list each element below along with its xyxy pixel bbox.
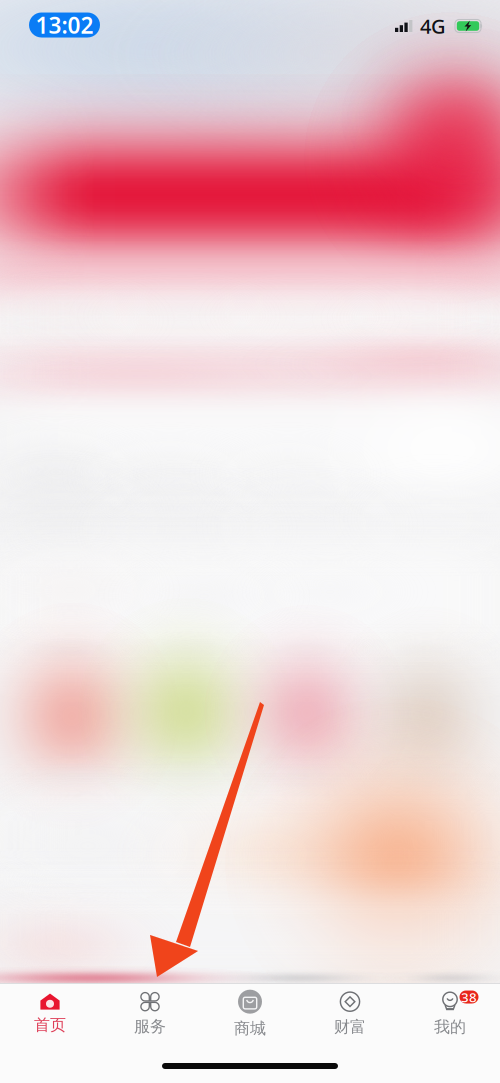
staticText: 38 xyxy=(461,988,477,1006)
staticText: 服务 xyxy=(134,1017,166,1036)
staticText: 13:02 xyxy=(35,10,93,40)
button[interactable]: 首页 xyxy=(0,986,100,1042)
button[interactable]: 服务 xyxy=(100,986,200,1042)
staticText: 4G xyxy=(420,13,446,39)
staticText: 我的 xyxy=(434,1017,466,1037)
button[interactable]: 财富 xyxy=(300,986,400,1042)
button[interactable]: 我的 xyxy=(400,986,500,1042)
button[interactable]: 商城 xyxy=(200,986,300,1042)
staticText: 财富 xyxy=(334,1017,366,1037)
staticText: 首页 xyxy=(34,1015,66,1035)
staticText: 商城 xyxy=(234,1019,266,1038)
